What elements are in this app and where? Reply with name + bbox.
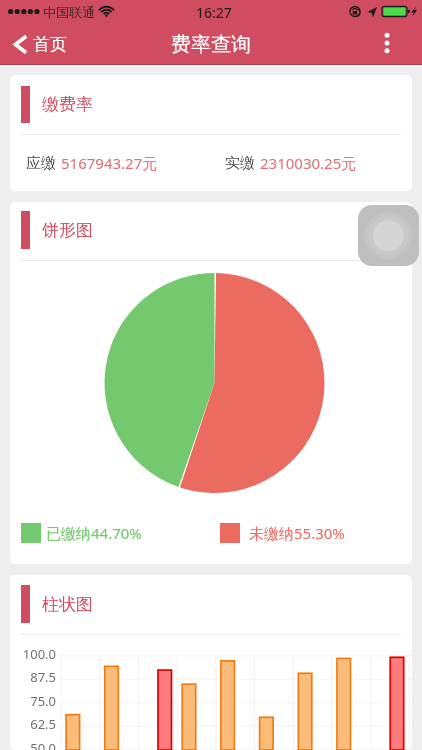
staticText: 50.0 [12, 739, 56, 750]
staticText: 首页 [33, 34, 67, 55]
staticText: 87.5 [12, 668, 56, 686]
button[interactable]: More options [373, 24, 401, 62]
staticText: 75.0 [12, 692, 56, 710]
staticText: 应缴 [26, 154, 56, 173]
staticText: 中国联通 [43, 4, 95, 20]
staticText: 5167943.27元 [61, 153, 158, 173]
button[interactable]: 应缴 [26, 153, 158, 173]
staticText: 未缴纳55.30% [249, 523, 345, 543]
button[interactable]: 已缴纳44.70% [21, 523, 142, 543]
button[interactable]: 未缴纳55.30% [220, 523, 345, 543]
staticText: 饼形图 [42, 220, 93, 241]
staticText: 2310030.25元 [260, 153, 357, 173]
button[interactable]: Assistive touch [358, 205, 419, 266]
staticText: 缴费率 [42, 94, 93, 115]
staticText: 实缴 [225, 154, 255, 173]
button[interactable]: 实缴 [225, 153, 357, 173]
staticText: 100.0 [12, 645, 56, 663]
staticText: 柱状图 [42, 594, 93, 615]
staticText: 62.5 [12, 715, 56, 733]
button[interactable]: 首页 [0, 28, 77, 61]
staticText: 已缴纳44.70% [46, 523, 142, 543]
staticText: 16:27 [196, 3, 232, 22]
staticText: 费率查询 [171, 32, 251, 57]
